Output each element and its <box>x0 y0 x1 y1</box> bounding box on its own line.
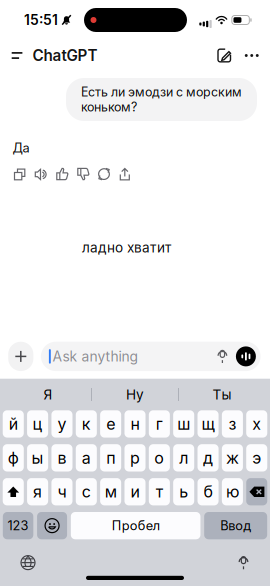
staticText: Есть ли эмодзи с морским коньком? <box>81 84 242 114</box>
staticText: Да <box>12 140 29 155</box>
staticText: д <box>203 448 213 468</box>
button[interactable]: ю <box>222 478 243 505</box>
staticText: Я <box>43 386 52 403</box>
button[interactable]: щ <box>197 410 219 438</box>
button[interactable]: т <box>149 478 170 505</box>
staticText: ч <box>57 482 66 501</box>
button[interactable]: Я <box>5 379 91 410</box>
button[interactable]: л <box>173 444 194 471</box>
staticText: б <box>203 482 212 501</box>
button[interactable]: Switch keyboard <box>8 545 48 581</box>
button[interactable]: х <box>246 410 267 438</box>
button[interactable]: Add attachment <box>8 342 33 371</box>
staticText: ж <box>226 448 239 468</box>
button[interactable]: Dictate <box>209 342 236 371</box>
staticText: в <box>57 448 66 468</box>
staticText: ц <box>33 414 43 434</box>
staticText: а <box>82 448 91 468</box>
button[interactable]: Emoji <box>37 512 67 539</box>
button[interactable]: Ты <box>179 379 265 410</box>
staticText: у <box>57 414 66 434</box>
button[interactable]: ы <box>27 444 48 471</box>
button[interactable]: г <box>149 410 170 438</box>
staticText: Ты <box>212 386 231 403</box>
button[interactable]: м <box>100 478 121 505</box>
button[interactable]: и <box>124 478 146 505</box>
button[interactable]: More options <box>238 40 270 71</box>
staticText: ы <box>32 448 44 468</box>
staticText: Ну <box>126 386 144 403</box>
staticText: ладно хватит <box>82 239 171 256</box>
button[interactable]: у <box>51 410 72 438</box>
button[interactable]: с <box>76 478 97 505</box>
button[interactable]: Delete <box>246 478 267 505</box>
staticText: э <box>252 448 261 468</box>
staticText: ш <box>177 414 190 434</box>
button[interactable]: Dictation <box>225 545 262 581</box>
button[interactable]: Ввод <box>204 512 267 539</box>
staticText: ChatGPT <box>32 46 97 65</box>
button[interactable]: н <box>124 410 146 438</box>
staticText: й <box>9 414 18 434</box>
button[interactable]: я <box>27 478 48 505</box>
button[interactable]: е <box>100 410 121 438</box>
staticText: н <box>130 414 139 434</box>
button[interactable]: ш <box>173 410 194 438</box>
button[interactable]: Good response <box>51 164 72 183</box>
staticText: ф <box>8 448 19 468</box>
staticText: з <box>228 414 236 434</box>
staticText: м <box>105 482 117 501</box>
staticText: п <box>106 448 115 468</box>
button[interactable]: ф <box>3 444 24 471</box>
button[interactable]: о <box>149 444 170 471</box>
staticText: ю <box>226 482 239 501</box>
staticText: я <box>33 482 42 501</box>
staticText: с <box>82 482 91 501</box>
button[interactable]: р <box>124 444 146 471</box>
button[interactable]: п <box>100 444 121 471</box>
button[interactable]: ь <box>173 478 194 505</box>
button[interactable]: Shift <box>3 478 24 505</box>
staticText: г <box>156 414 163 434</box>
button[interactable]: Share <box>114 164 135 183</box>
staticText: о <box>154 448 164 468</box>
button[interactable]: б <box>197 478 219 505</box>
button[interactable]: Voice mode <box>236 342 261 371</box>
button[interactable]: ChatGPT <box>32 38 97 73</box>
staticText: щ <box>201 414 214 434</box>
staticText: к <box>82 414 91 434</box>
button[interactable]: в <box>51 444 72 471</box>
staticText: Пробел <box>112 518 160 533</box>
staticText: л <box>179 448 188 468</box>
staticText: е <box>106 414 115 434</box>
button[interactable]: Read aloud <box>30 164 51 183</box>
button[interactable]: ц <box>27 410 48 438</box>
button[interactable]: к <box>76 410 97 438</box>
button[interactable]: э <box>246 444 267 471</box>
button[interactable]: з <box>222 410 243 438</box>
button[interactable]: Ну <box>92 379 178 410</box>
staticText: р <box>130 448 140 468</box>
button[interactable]: д <box>197 444 219 471</box>
button[interactable]: 123 <box>3 512 33 539</box>
button[interactable]: Bad response <box>72 164 93 183</box>
staticText: 15:51 <box>24 12 58 28</box>
staticText: Ask anything <box>53 348 139 365</box>
button[interactable]: Sidebar <box>0 42 32 69</box>
button[interactable]: Пробел <box>71 512 200 539</box>
staticText: х <box>252 414 261 434</box>
button[interactable]: New chat <box>210 40 238 71</box>
button[interactable]: ж <box>222 444 243 471</box>
staticText: 123 <box>8 518 29 533</box>
button[interactable]: Copy <box>9 164 30 183</box>
staticText: и <box>130 482 139 501</box>
button[interactable]: й <box>3 410 24 438</box>
staticText: Ввод <box>220 518 251 533</box>
staticText: ь <box>179 482 188 501</box>
button[interactable]: Regenerate <box>93 164 114 183</box>
staticText: т <box>156 482 163 501</box>
button[interactable]: Ask anything <box>41 342 209 371</box>
button[interactable]: ч <box>51 478 72 505</box>
button[interactable]: а <box>76 444 97 471</box>
